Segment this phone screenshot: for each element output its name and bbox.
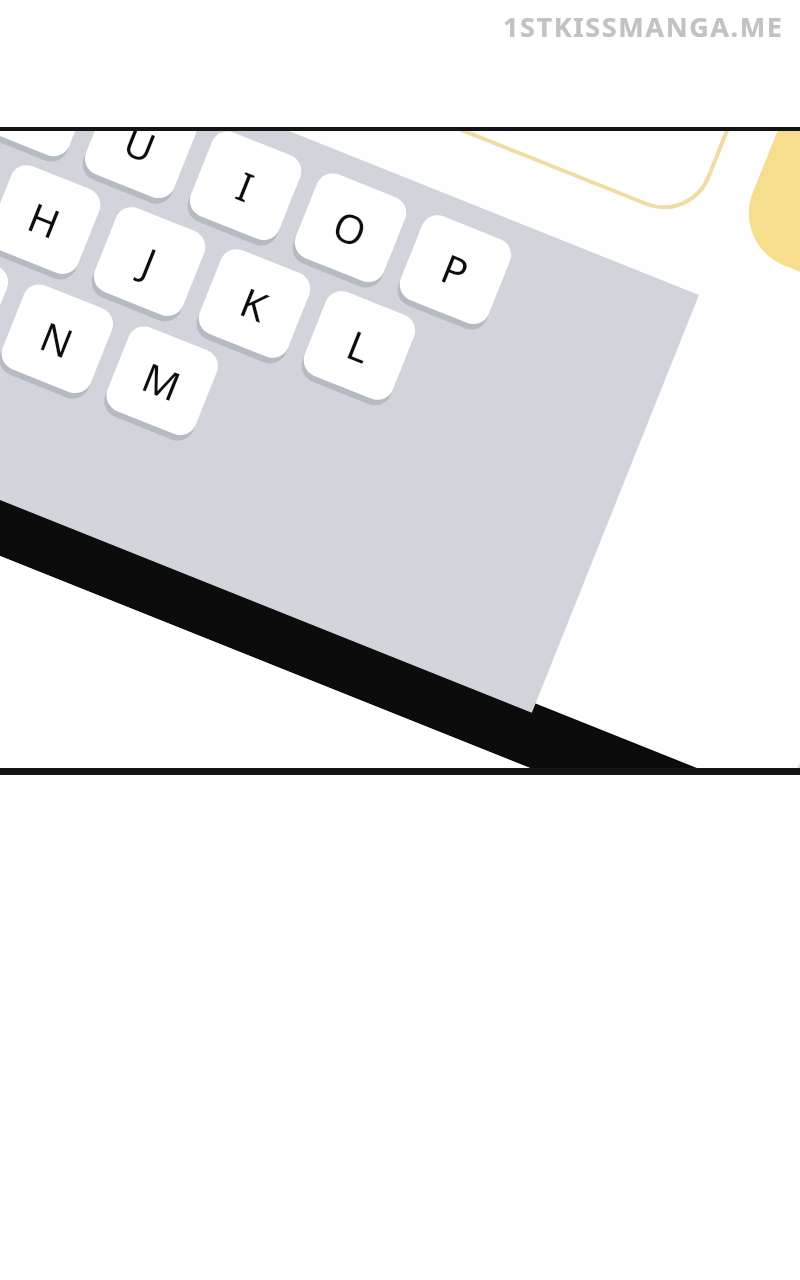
button[interactable]: Comic panel: tilted phone showing a chat… [0, 0, 800, 1280]
